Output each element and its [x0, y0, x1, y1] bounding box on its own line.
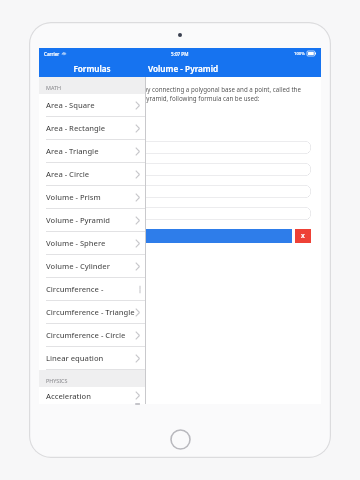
button[interactable]: Circumference - Triangle [39, 301, 145, 324]
staticText: Volume - Cylinder [46, 261, 110, 271]
staticText: Carrier [44, 51, 60, 57]
button[interactable]: Volume - Sphere [39, 232, 145, 255]
button[interactable]: Circumference - Rectangle [39, 278, 145, 301]
staticText: Linear equation [46, 353, 104, 363]
staticText: Area - Square [46, 100, 95, 110]
staticText: Volume - Sphere [46, 238, 106, 248]
staticText: Area - Circle [46, 169, 90, 179]
button[interactable]: Circumference - Circle [39, 324, 145, 347]
staticText: Volume - Prism [46, 192, 101, 202]
button[interactable] [43, 185, 311, 198]
button[interactable]: Acceleration [39, 387, 145, 404]
button[interactable]: Home [170, 429, 191, 450]
staticText: Circumference - Rectangle [46, 284, 140, 294]
button[interactable] [43, 207, 311, 220]
button[interactable]: Area - Rectangle [39, 117, 145, 140]
staticText: Volume - Pyramid [148, 63, 219, 74]
button[interactable]: Linear equation [39, 347, 145, 370]
staticText: MATH [46, 84, 61, 91]
staticText: Circumference - Circle [46, 330, 126, 340]
button[interactable]: Area - Square [39, 94, 145, 117]
button[interactable]: Clear [295, 229, 311, 243]
button[interactable] [43, 141, 311, 154]
staticText: Acceleration [46, 391, 91, 401]
staticText: X [301, 232, 305, 240]
staticText: 5:07 PM [171, 51, 189, 57]
button[interactable]: Volume - Prism [39, 186, 145, 209]
button[interactable] [43, 163, 311, 176]
staticText: Area - Rectangle [46, 123, 106, 133]
staticText: Formulas [73, 63, 111, 74]
button[interactable]: Calculate [43, 229, 292, 243]
button[interactable]: Area - Triangle [39, 140, 145, 163]
staticText: 100% [294, 51, 305, 57]
staticText: Circumference - Triangle [46, 307, 135, 317]
button[interactable]: Area - Circle [39, 163, 145, 186]
button[interactable]: Volume - Pyramid [39, 209, 145, 232]
staticText: Volume - Pyramid [46, 215, 110, 225]
staticText: PHYSICS [46, 377, 68, 384]
staticText: A pyramid is a polyhedron formed by conn… [43, 85, 311, 112]
button[interactable]: Volume - Cylinder [39, 255, 145, 278]
staticText: Area - Triangle [46, 146, 99, 156]
